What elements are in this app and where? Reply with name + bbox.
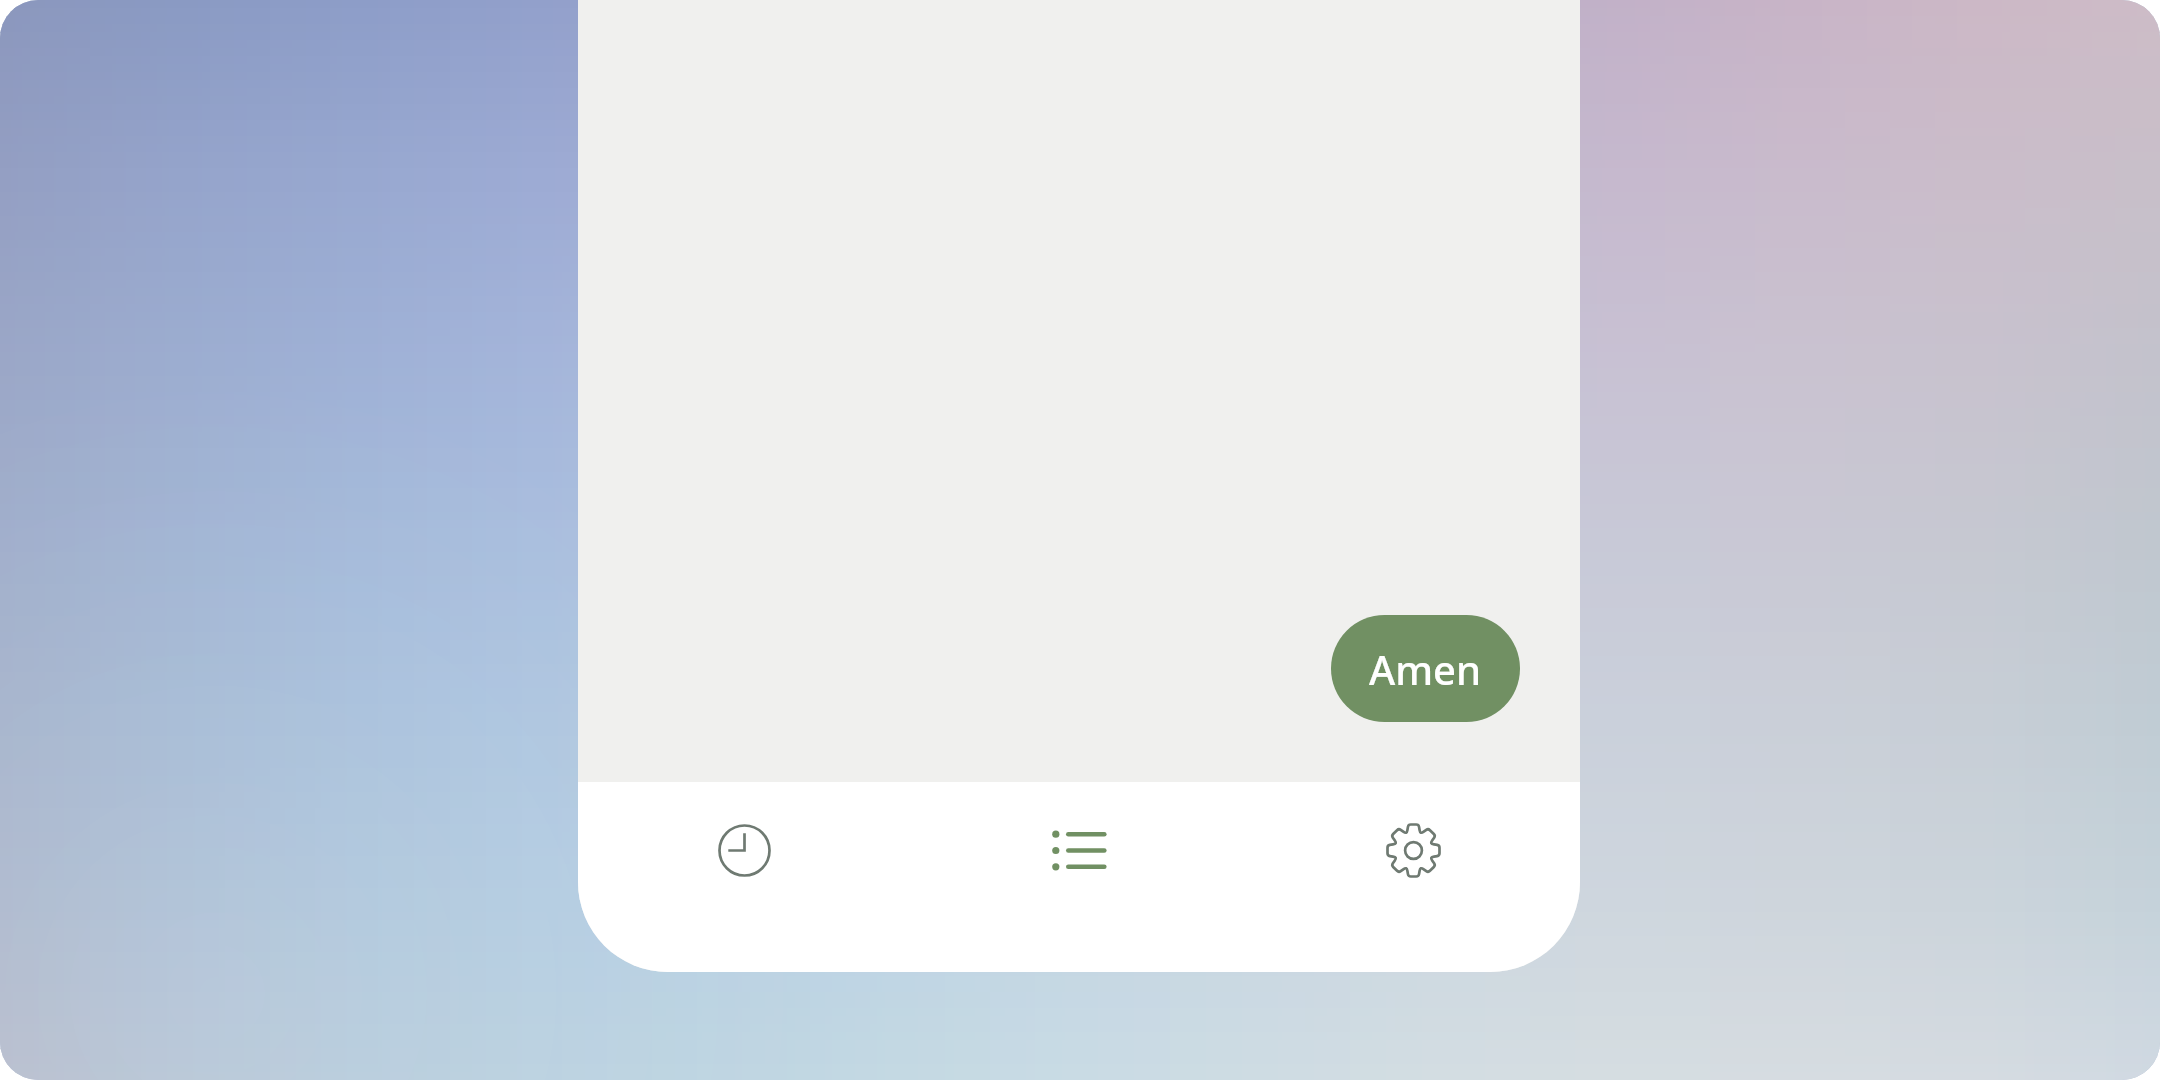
button[interactable]: Timer [654, 782, 834, 919]
button[interactable]: Settings [1323, 782, 1503, 919]
staticText: Amen [1369, 642, 1482, 696]
button[interactable]: Amen [1331, 615, 1520, 722]
button[interactable]: Prayer list [990, 782, 1170, 919]
